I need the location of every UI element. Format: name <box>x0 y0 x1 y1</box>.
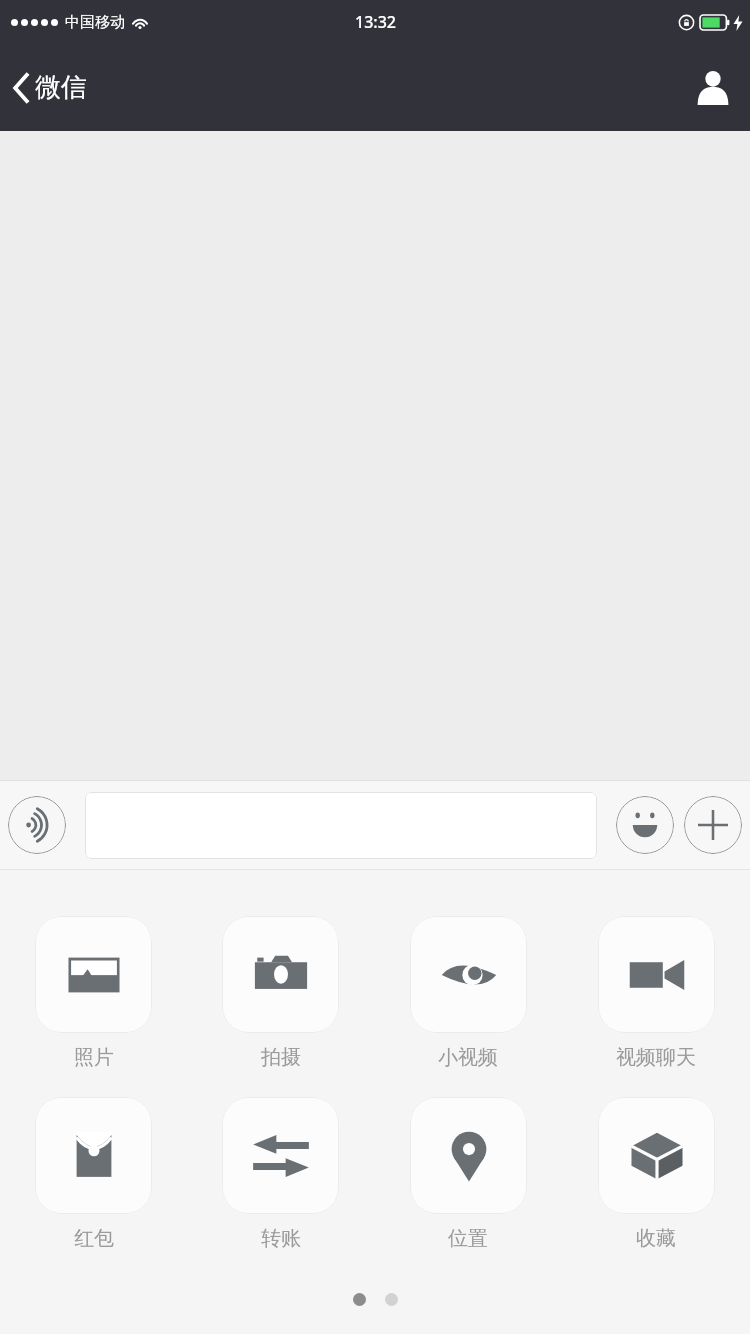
staticText: 收藏 <box>636 1226 676 1251</box>
staticText: 微信 <box>35 71 87 104</box>
staticText: 拍摄 <box>261 1045 301 1070</box>
button[interactable]: Contact profile <box>690 65 736 111</box>
button[interactable]: 红包 <box>0 1097 187 1251</box>
button[interactable]: 视频聊天 <box>562 916 750 1070</box>
button[interactable]: 转账 <box>187 1097 374 1251</box>
button[interactable]: 拍摄 <box>187 916 374 1070</box>
staticText: 位置 <box>448 1226 488 1251</box>
button[interactable]: Voice message <box>8 796 66 854</box>
button[interactable]: Emoji <box>616 796 674 854</box>
staticText: 视频聊天 <box>616 1045 696 1070</box>
staticText: 红包 <box>74 1226 114 1251</box>
staticText: 小视频 <box>438 1045 498 1070</box>
staticText: 中国移动 <box>65 13 125 32</box>
button[interactable]: 小视频 <box>374 916 562 1070</box>
staticText: 13:32 <box>355 11 396 33</box>
button[interactable]: 微信 <box>0 63 101 112</box>
staticText: 照片 <box>74 1045 114 1070</box>
button[interactable] <box>85 792 597 859</box>
button[interactable]: 位置 <box>374 1097 562 1251</box>
button[interactable]: 照片 <box>0 916 187 1070</box>
button[interactable]: 收藏 <box>562 1097 750 1251</box>
button[interactable]: More attachments <box>684 796 742 854</box>
staticText: 转账 <box>261 1226 301 1251</box>
